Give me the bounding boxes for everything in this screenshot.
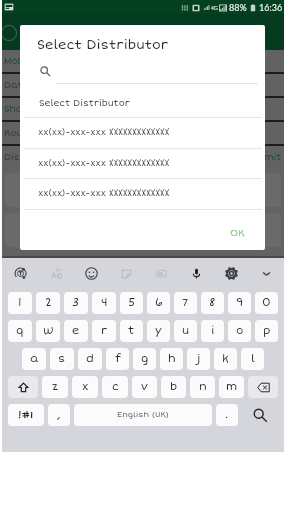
staticText: z <box>52 380 58 394</box>
button[interactable]: xx(xx)-xxx-xxx XXXXXXXXXXXXX <box>20 117 265 148</box>
button[interactable]: 4 <box>92 292 116 314</box>
staticText: u <box>182 324 190 338</box>
staticText: q <box>16 324 24 338</box>
button[interactable]: b <box>161 376 186 398</box>
button[interactable]: j <box>187 348 210 370</box>
staticText: y <box>155 324 162 338</box>
button[interactable]: Settings <box>214 258 249 288</box>
staticText: 3 <box>72 296 80 310</box>
staticText: Mobile Number <box>4 56 77 67</box>
button[interactable]: xx(xx)-xxx-xxx XXXXXXXXXXXXX <box>20 178 265 209</box>
staticText: !#1 <box>18 409 34 421</box>
button[interactable]: e <box>64 320 88 342</box>
staticText: Submit <box>247 152 282 163</box>
staticText: f <box>115 352 121 366</box>
button[interactable]: OK <box>223 221 252 245</box>
staticText: , <box>57 408 61 422</box>
staticText: l <box>251 352 255 366</box>
button[interactable]: w <box>36 320 60 342</box>
button[interactable]: Voice input <box>179 258 214 288</box>
staticText: r <box>101 324 108 338</box>
staticText: x <box>82 380 89 394</box>
button[interactable]: Customer <box>5 213 281 247</box>
staticText: xx(xx)-xxx-xxx XXXXXXXXXXXXX <box>38 158 170 169</box>
staticText: 88% <box>229 2 247 13</box>
button[interactable]: English (UK) <box>74 404 212 426</box>
button[interactable]: Customer <box>5 173 281 207</box>
button[interactable]: , <box>48 404 70 426</box>
staticText: 5 <box>128 296 136 310</box>
staticText: i <box>211 324 215 338</box>
staticText: 2 <box>45 296 52 310</box>
button[interactable]: Search <box>242 404 278 426</box>
button[interactable]: p <box>255 320 278 342</box>
button[interactable]: Emoji <box>74 258 109 288</box>
button[interactable]: Backspace <box>248 376 278 398</box>
button[interactable]: i <box>201 320 224 342</box>
button[interactable]: r <box>92 320 116 342</box>
staticText: g <box>141 352 149 366</box>
button[interactable]: n <box>190 376 215 398</box>
button[interactable]: 3 <box>64 292 88 314</box>
staticText: h <box>168 352 176 366</box>
button[interactable]: y <box>147 320 170 342</box>
button[interactable]: 6 <box>147 292 170 314</box>
button[interactable]: . <box>216 404 238 426</box>
button[interactable]: 1 <box>8 292 32 314</box>
button[interactable]: k <box>214 348 237 370</box>
button[interactable]: z <box>42 376 68 398</box>
staticText: English (UK) <box>117 410 169 420</box>
button[interactable]: 2 <box>36 292 60 314</box>
staticText: Date <box>4 80 29 91</box>
staticText: . <box>225 408 229 422</box>
button[interactable]: t <box>120 320 143 342</box>
button[interactable]: Translate <box>2 258 38 288</box>
staticText: v <box>141 380 148 394</box>
button[interactable]: xx(xx)-xxx-xxx XXXXXXXXXXXXX <box>20 148 265 179</box>
button[interactable]: Stickers <box>109 258 144 288</box>
button[interactable]: Shift <box>8 376 38 398</box>
button[interactable]: d <box>78 348 102 370</box>
staticText: b <box>170 380 178 394</box>
button[interactable]: 5 <box>120 292 143 314</box>
staticText: 8 <box>209 296 216 310</box>
button[interactable]: GIF <box>144 258 179 288</box>
button[interactable]: l <box>241 348 264 370</box>
staticText: p <box>263 324 271 338</box>
staticText: 4 <box>101 296 108 310</box>
staticText: Shop Name <box>4 104 60 115</box>
staticText: k <box>222 352 229 366</box>
staticText: w <box>43 324 54 338</box>
button[interactable]: v <box>132 376 157 398</box>
staticText: m <box>226 380 238 394</box>
staticText: 0 <box>262 296 271 310</box>
staticText: 6 <box>155 296 163 310</box>
button[interactable]: !#1 <box>8 404 44 426</box>
staticText: s <box>58 352 66 366</box>
button[interactable]: 9 <box>228 292 251 314</box>
staticText: Customer <box>25 185 69 195</box>
button[interactable]: g <box>133 348 156 370</box>
staticText: 9 <box>236 296 244 310</box>
button[interactable]: m <box>219 376 244 398</box>
button[interactable]: f <box>106 348 129 370</box>
button[interactable]: x <box>72 376 98 398</box>
button[interactable]: s <box>50 348 74 370</box>
staticText: j <box>197 352 201 366</box>
button[interactable]: u <box>174 320 197 342</box>
button[interactable]: 0 <box>255 292 278 314</box>
staticText: n <box>199 380 207 394</box>
button[interactable]: Collapse <box>249 258 284 288</box>
button[interactable]: o <box>228 320 251 342</box>
button[interactable]: 8 <box>201 292 224 314</box>
staticText: a <box>30 352 39 366</box>
button[interactable]: h <box>160 348 183 370</box>
button[interactable]: q <box>8 320 32 342</box>
staticText: 1 <box>18 296 22 310</box>
button[interactable]: c <box>102 376 128 398</box>
button[interactable]: a <box>22 348 46 370</box>
button[interactable]: Text style <box>38 258 74 288</box>
button[interactable]: 7 <box>174 292 197 314</box>
staticText: Distributor <box>4 152 61 163</box>
